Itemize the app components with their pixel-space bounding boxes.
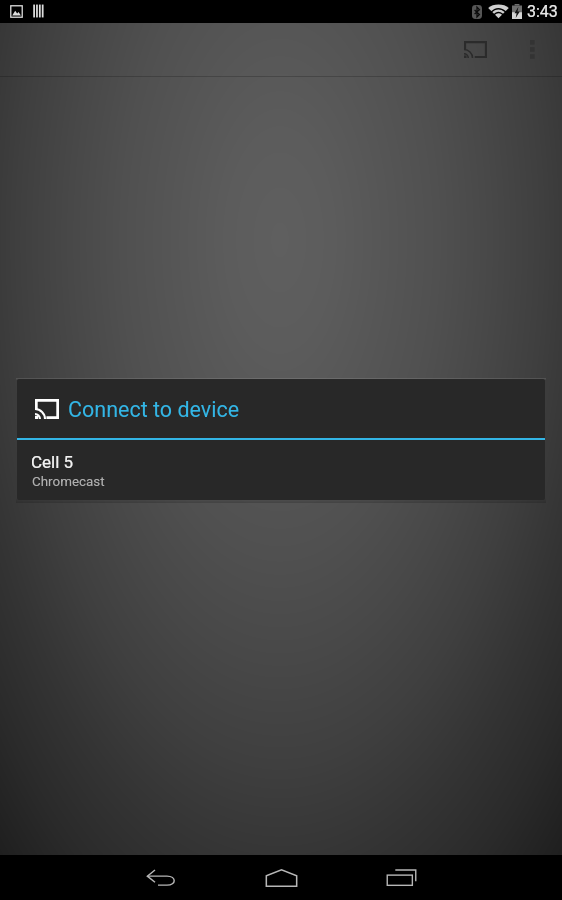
staticText: Connect to device (68, 397, 240, 422)
button[interactable]: Cast (451, 23, 499, 75)
button[interactable]: Back (101, 855, 221, 900)
button[interactable]: Cell 5 (17, 440, 545, 500)
button[interactable]: Connect to device (17, 379, 545, 438)
button[interactable]: Home (221, 855, 341, 900)
staticText: Cell 5 (31, 452, 74, 472)
button[interactable]: More options (508, 23, 556, 75)
button[interactable]: Recent apps (341, 855, 461, 900)
staticText: Chromecast (32, 474, 105, 490)
staticText: 3:43 (527, 2, 558, 21)
